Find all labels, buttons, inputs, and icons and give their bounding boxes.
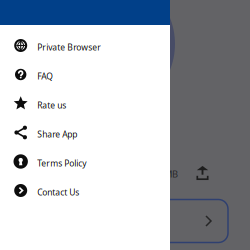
- button[interactable]: Contact Us: [0, 176, 170, 205]
- staticText: 19 MB: [152, 167, 178, 180]
- staticText: Terms Policy: [37, 157, 86, 169]
- button[interactable]: Private Browser: [0, 31, 170, 60]
- staticText: FAQ: [37, 70, 53, 82]
- button[interactable]: Share App: [0, 118, 170, 147]
- button[interactable]: FAQ: [0, 60, 170, 89]
- staticText: Share App: [37, 128, 77, 140]
- staticText: Rate us: [37, 99, 66, 111]
- staticText: Contact Us: [37, 186, 79, 198]
- button[interactable]: Terms Policy: [0, 147, 170, 176]
- staticText: Private Browser: [37, 41, 101, 53]
- button[interactable]: Rate us: [0, 89, 170, 118]
